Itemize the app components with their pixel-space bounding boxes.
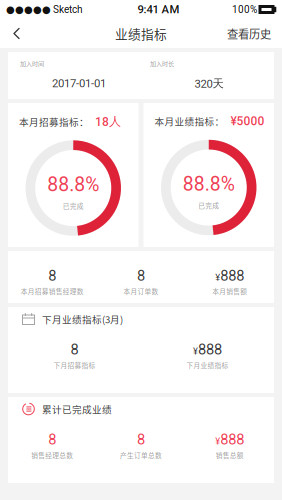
staticText: 8: [48, 267, 56, 284]
staticText: 下月招募指标: [53, 360, 95, 370]
staticText: ¥5000: [224, 114, 264, 128]
staticText: 加入时长: [150, 59, 174, 68]
staticText: 本月销售额: [212, 286, 247, 296]
staticText: 100%: [232, 4, 257, 15]
staticText: 9:41 AM: [137, 3, 179, 16]
staticText: 8: [137, 267, 145, 284]
staticText: ¥: [193, 346, 198, 357]
staticText: 18人: [89, 114, 121, 129]
staticText: 8: [70, 341, 78, 358]
staticText: 本月业绩指标：: [154, 114, 224, 128]
staticText: 销售总额: [216, 450, 244, 460]
staticText: ¥: [215, 272, 220, 283]
staticText: 销售经理总数: [31, 450, 73, 460]
staticText: 88.8%: [183, 173, 235, 196]
staticText: 加入时间: [20, 59, 44, 68]
staticText: 8: [137, 431, 145, 448]
button[interactable]: 查看历史: [216, 19, 282, 48]
staticText: 88.8%: [47, 173, 99, 196]
staticText: 本月招募指标：: [19, 115, 89, 128]
staticText: 下月业绩指标: [186, 360, 228, 370]
staticText: 已完成: [198, 200, 219, 210]
staticText: 8: [48, 431, 56, 448]
staticText: 888: [220, 431, 244, 448]
staticText: 累计已完成业绩: [42, 402, 112, 416]
staticText: 2017-01-01: [52, 77, 106, 90]
staticText: 已完成: [63, 201, 84, 211]
staticText: 888: [198, 341, 222, 358]
staticText: 产生订单总数: [120, 450, 162, 460]
staticText: 本月招募销售经理数: [21, 286, 84, 296]
staticText: 下月业绩指标(3月): [42, 312, 123, 326]
staticText: 查看历史: [227, 25, 271, 42]
staticText: 本月订单数: [123, 286, 158, 296]
staticText: 888: [220, 267, 244, 284]
staticText: ●●●●● Sketch: [6, 4, 85, 15]
staticText: 业绩指标: [115, 24, 167, 43]
button[interactable]: Back: [0, 19, 34, 48]
staticText: ¥: [215, 436, 220, 447]
staticText: 320天: [194, 76, 223, 91]
